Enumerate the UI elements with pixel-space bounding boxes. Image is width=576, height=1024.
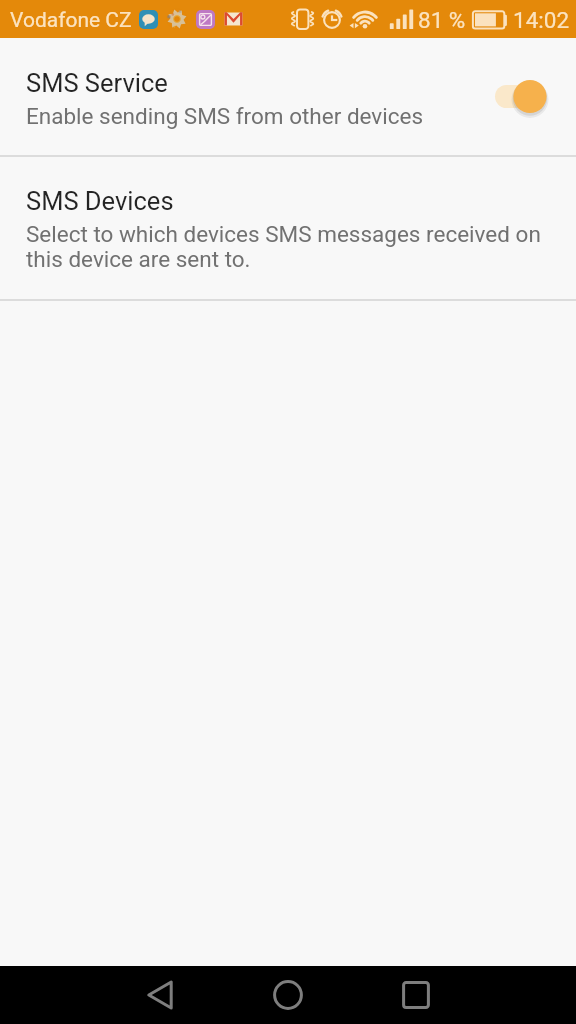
button[interactable]: Toggle SMS Service	[489, 74, 549, 119]
other: Battery 81 percent	[470, 7, 508, 29]
other: Vibrate mode	[290, 8, 316, 30]
button[interactable]: Recent apps	[368, 966, 464, 1024]
staticText: Vodafone CZ	[10, 8, 132, 33]
staticText: Enable sending SMS from other devices	[26, 103, 424, 129]
staticText: SMS Service	[26, 68, 168, 98]
staticText: 81 %	[418, 7, 466, 33]
button[interactable]: Home	[240, 966, 336, 1024]
staticText: 14:02	[513, 7, 570, 33]
other: Wi-Fi connected	[346, 8, 380, 32]
other: Alarm set	[320, 8, 344, 30]
staticText: SMS Devices	[26, 186, 174, 216]
button[interactable]: Back	[112, 966, 208, 1024]
button[interactable]: SMS Devices	[0, 157, 576, 299]
staticText: Select to which devices SMS messages rec…	[26, 221, 542, 273]
button[interactable]: SMS Service	[0, 38, 576, 155]
other: Mobile signal	[388, 8, 414, 30]
